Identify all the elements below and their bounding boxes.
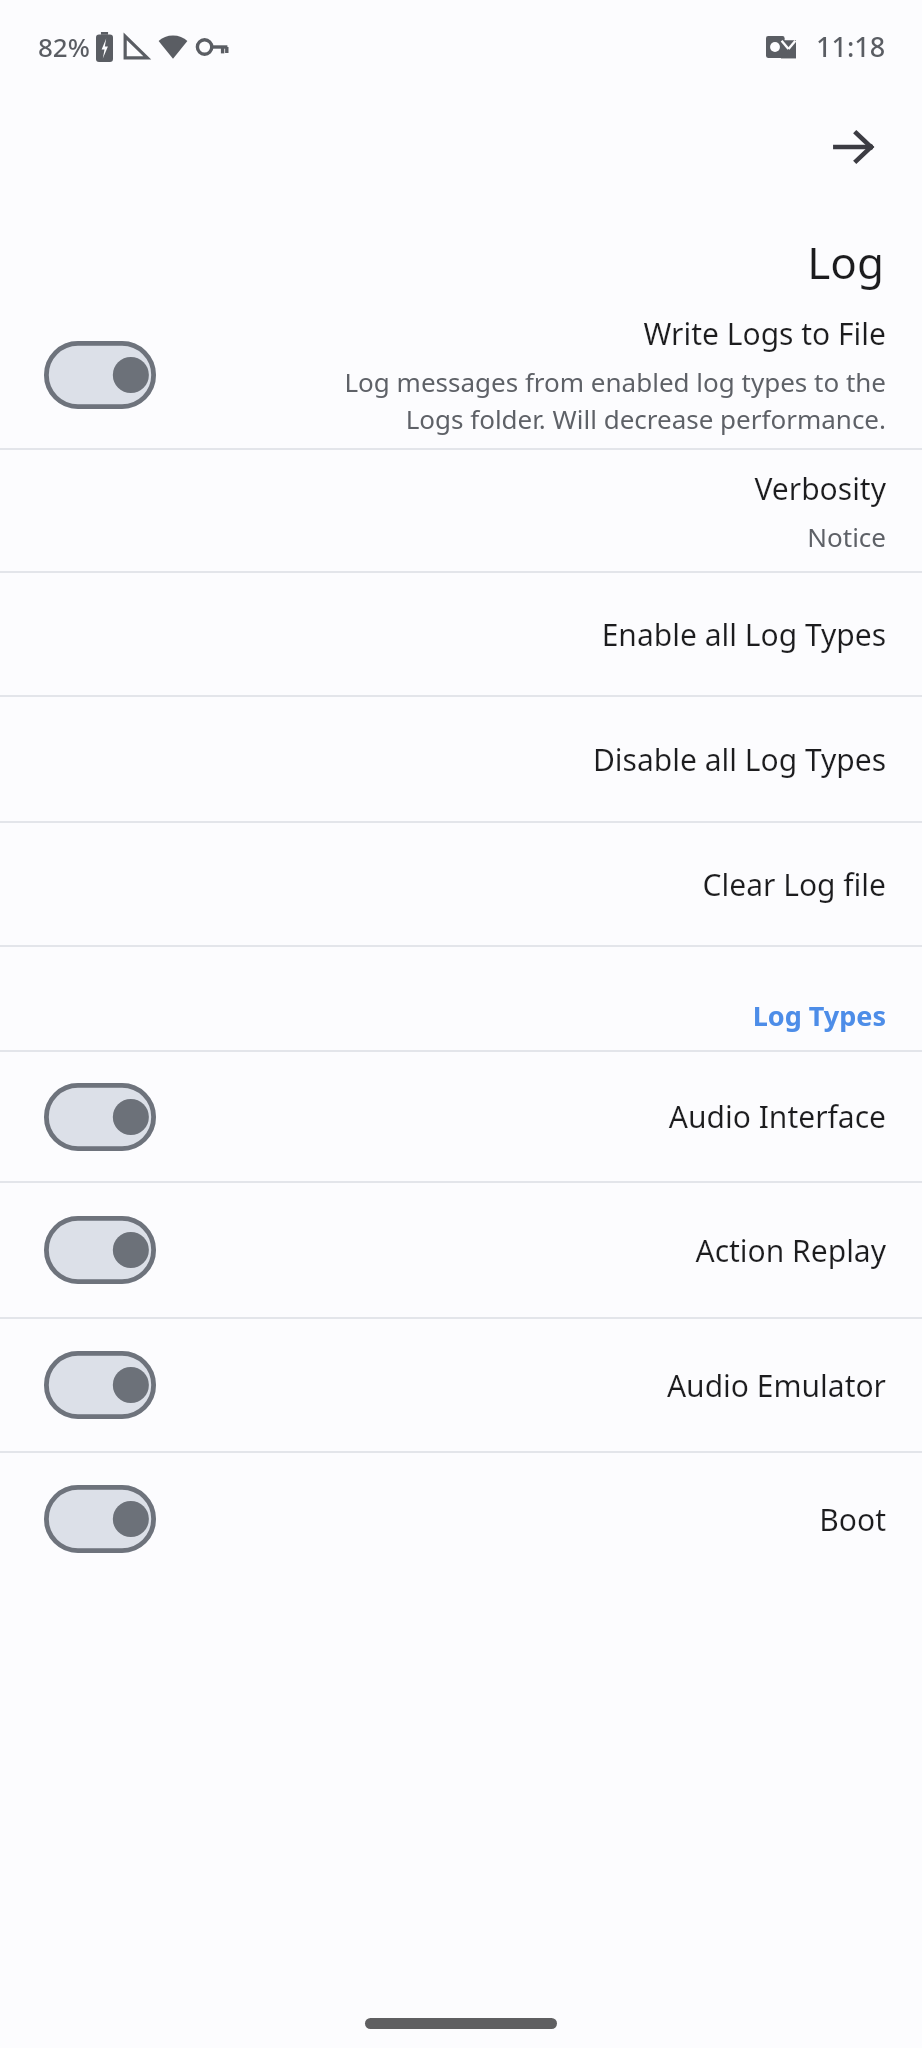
staticText: Enable all Log Types: [601, 614, 886, 655]
staticText: Audio Emulator: [666, 1365, 886, 1406]
staticText: Disable all Log Types: [592, 739, 886, 780]
button[interactable]: Audio Emulator: [0, 1319, 922, 1451]
staticText: Boot: [819, 1499, 886, 1540]
staticText: Write Logs to File: [643, 313, 886, 354]
staticText: Notice: [807, 519, 886, 554]
button[interactable]: Enable all Log Types: [0, 573, 922, 695]
button[interactable]: Clear Log file: [0, 823, 922, 945]
button[interactable]: Back: [820, 114, 886, 180]
staticText: 11:18: [816, 28, 886, 65]
button[interactable]: Boot: [0, 1453, 922, 1585]
button[interactable]: Disable all Log Types: [0, 697, 922, 821]
staticText: Clear Log file: [702, 864, 886, 905]
staticText: Verbosity: [754, 468, 886, 509]
staticText: Log messages from enabled log types to t…: [344, 364, 886, 437]
button[interactable]: Write Logs to File: [0, 302, 922, 448]
button[interactable]: Audio Interface: [0, 1052, 922, 1181]
staticText: Log: [807, 232, 884, 292]
button[interactable]: Verbosity: [0, 450, 922, 571]
staticText: Audio Interface: [668, 1096, 886, 1137]
staticText: 82%: [38, 29, 90, 64]
button[interactable]: Action Replay: [0, 1183, 922, 1317]
staticText: Log Types: [752, 997, 886, 1034]
staticText: Action Replay: [695, 1230, 886, 1271]
